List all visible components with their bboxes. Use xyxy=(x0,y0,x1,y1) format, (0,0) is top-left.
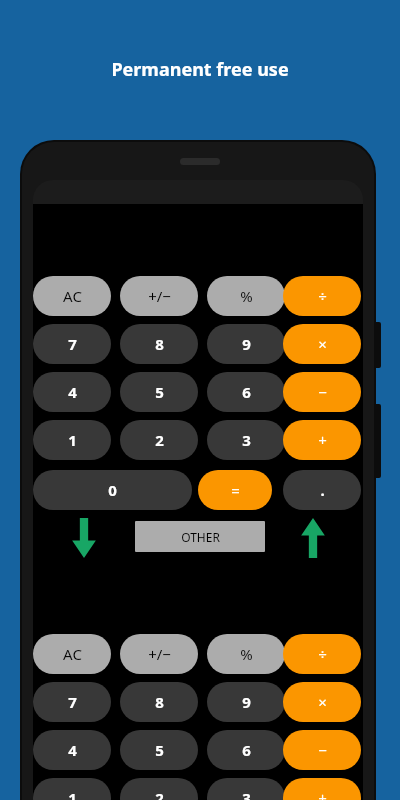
staticText: 3 xyxy=(242,788,251,800)
button[interactable]: 4 xyxy=(33,372,111,412)
staticText: ÷ xyxy=(318,644,327,664)
staticText: AC xyxy=(63,286,82,306)
staticText: 3 xyxy=(242,430,251,450)
button[interactable]: 6 xyxy=(207,372,285,412)
button[interactable]: 2 xyxy=(120,778,198,800)
button[interactable]: Scroll up xyxy=(297,518,329,558)
staticText: × xyxy=(318,692,327,712)
button[interactable]: 6 xyxy=(207,730,285,770)
button[interactable]: ÷ xyxy=(283,276,361,316)
other: Volume buttons xyxy=(372,404,381,478)
staticText: 8 xyxy=(155,334,164,354)
staticText: 5 xyxy=(155,740,164,760)
staticText: − xyxy=(318,740,327,760)
staticText: 4 xyxy=(68,382,77,402)
button[interactable]: − xyxy=(283,372,361,412)
button[interactable]: +/− xyxy=(120,276,198,316)
staticText: AC xyxy=(63,644,82,664)
button[interactable]: . xyxy=(283,470,361,510)
button[interactable]: 5 xyxy=(120,372,198,412)
button[interactable]: OTHER xyxy=(135,521,265,552)
staticText: ÷ xyxy=(318,286,327,306)
staticText: 4 xyxy=(68,740,77,760)
staticText: +/− xyxy=(148,286,171,306)
button[interactable]: 4 xyxy=(33,730,111,770)
button[interactable]: 9 xyxy=(207,682,285,722)
staticText: +/− xyxy=(148,644,171,664)
button[interactable]: % xyxy=(207,276,285,316)
staticText: % xyxy=(240,286,253,306)
staticText: OTHER xyxy=(181,529,220,545)
staticText: 6 xyxy=(242,382,251,402)
button[interactable]: % xyxy=(207,634,285,674)
button[interactable]: 1 xyxy=(33,420,111,460)
button[interactable]: AC xyxy=(33,634,111,674)
staticText: 2 xyxy=(155,430,164,450)
button[interactable]: × xyxy=(283,682,361,722)
button[interactable]: × xyxy=(283,324,361,364)
other: Power button xyxy=(372,322,381,368)
staticText: − xyxy=(318,382,327,402)
staticText: = xyxy=(231,480,240,500)
button[interactable]: 3 xyxy=(207,420,285,460)
button[interactable]: 7 xyxy=(33,682,111,722)
staticText: 1 xyxy=(68,788,77,800)
button[interactable]: = xyxy=(198,470,272,510)
staticText: 2 xyxy=(155,788,164,800)
staticText: 9 xyxy=(242,692,251,712)
button[interactable]: + xyxy=(283,778,361,800)
button[interactable]: 7 xyxy=(33,324,111,364)
staticText: 5 xyxy=(155,382,164,402)
button[interactable]: 5 xyxy=(120,730,198,770)
staticText: 8 xyxy=(155,692,164,712)
button[interactable]: + xyxy=(283,420,361,460)
button[interactable]: 1 xyxy=(33,778,111,800)
button[interactable]: 9 xyxy=(207,324,285,364)
staticText: Permanent free use xyxy=(111,57,289,82)
button[interactable]: ÷ xyxy=(283,634,361,674)
button[interactable]: Scroll down xyxy=(68,518,100,558)
button[interactable]: +/− xyxy=(120,634,198,674)
button[interactable]: 8 xyxy=(120,682,198,722)
button[interactable]: AC xyxy=(33,276,111,316)
staticText: 0 xyxy=(108,480,117,500)
button[interactable]: − xyxy=(283,730,361,770)
staticText: 9 xyxy=(242,334,251,354)
staticText: 6 xyxy=(242,740,251,760)
staticText: × xyxy=(318,334,327,354)
staticText: . xyxy=(320,480,325,500)
staticText: % xyxy=(240,644,253,664)
staticText: + xyxy=(318,430,327,450)
button[interactable]: 8 xyxy=(120,324,198,364)
button[interactable]: 2 xyxy=(120,420,198,460)
staticText: 7 xyxy=(68,692,77,712)
staticText: 7 xyxy=(68,334,77,354)
staticText: 1 xyxy=(68,430,77,450)
staticText: + xyxy=(318,788,327,800)
button[interactable]: 3 xyxy=(207,778,285,800)
button[interactable]: 0 xyxy=(33,470,192,510)
